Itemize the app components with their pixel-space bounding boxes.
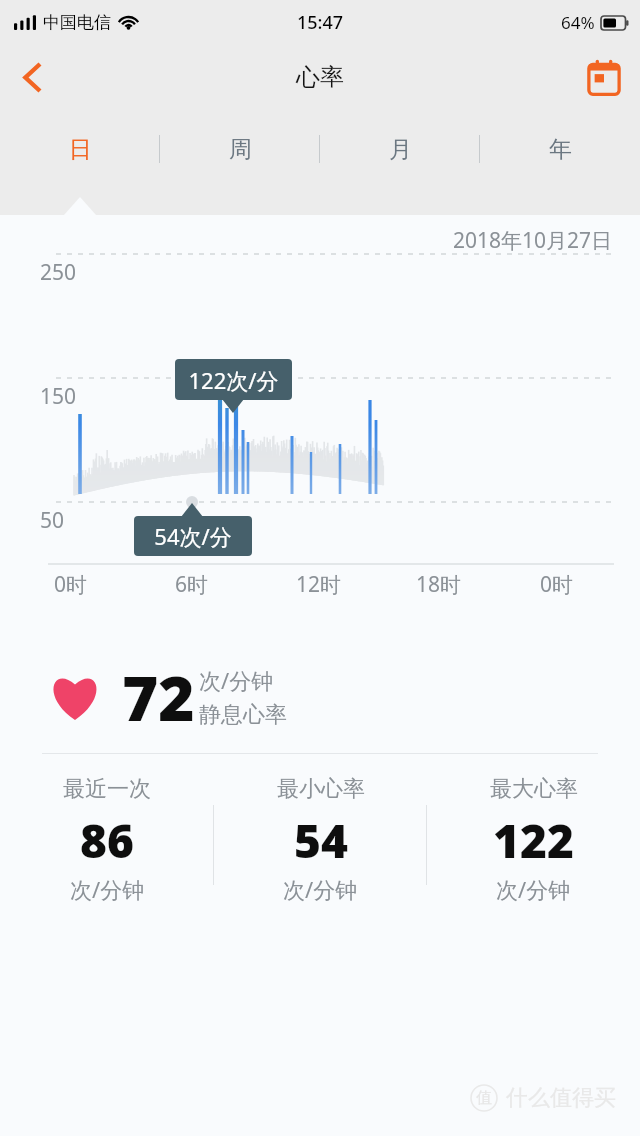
button[interactable]: 选择日期 <box>576 49 632 105</box>
staticText: 最小心率 <box>277 775 365 803</box>
staticText: 250 <box>40 258 77 287</box>
staticText: 2018年10月27日 <box>0 226 612 255</box>
staticText: 静息心率 <box>199 701 287 729</box>
button[interactable]: 返回 <box>4 48 62 106</box>
staticText: 次/分钟 <box>199 665 274 695</box>
staticText: 最大心率 <box>490 775 578 803</box>
staticText: 月 <box>389 135 412 164</box>
staticText: 次/分钟 <box>496 874 571 904</box>
staticText: 18时 <box>416 570 462 599</box>
staticText: 值 <box>476 1088 492 1108</box>
staticText: 122 <box>493 809 574 872</box>
staticText: 次/分钟 <box>283 874 358 904</box>
staticText: 54次/分 <box>134 521 252 551</box>
staticText: 122次/分 <box>175 365 292 395</box>
button[interactable]: 日 <box>0 110 160 188</box>
staticText: 64% <box>561 11 595 34</box>
staticText: 150 <box>40 382 77 411</box>
staticText: 什么值得买 <box>506 1084 616 1112</box>
button[interactable]: 最小心率 <box>214 775 427 915</box>
staticText: 0时 <box>540 570 574 599</box>
staticText: 次/分钟 <box>70 874 145 904</box>
staticText: 日 <box>69 135 92 164</box>
staticText: 心率 <box>296 62 344 92</box>
staticText: 6时 <box>175 570 209 599</box>
staticText: 15:47 <box>297 10 344 35</box>
staticText: 最近一次 <box>63 775 151 803</box>
button[interactable]: 周 <box>160 110 320 188</box>
staticText: 周 <box>229 135 252 164</box>
button[interactable]: 最近一次 <box>0 775 214 915</box>
button[interactable]: 年 <box>480 110 640 188</box>
staticText: 54 <box>294 809 348 872</box>
staticText: 0时 <box>54 570 88 599</box>
staticText: 50 <box>40 506 65 535</box>
staticText: 中国电信 <box>43 12 111 33</box>
staticText: 12时 <box>296 570 342 599</box>
staticText: 72 <box>122 655 195 739</box>
staticText: 年 <box>549 135 572 164</box>
staticText: 86 <box>80 809 134 872</box>
button[interactable]: 月 <box>320 110 480 188</box>
button[interactable]: 最大心率 <box>427 775 640 915</box>
